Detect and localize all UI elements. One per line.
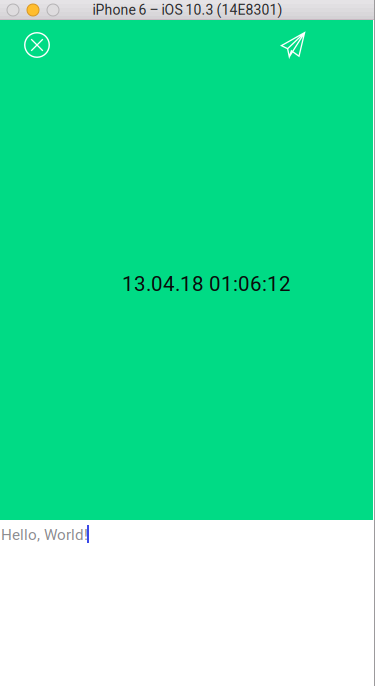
staticText: iPhone 6 – iOS 10.3 (14E8301) <box>92 2 282 18</box>
button[interactable]: Close <box>24 32 50 58</box>
staticText: Hello, World! <box>1 526 88 544</box>
staticText: 13.04.18 01:06:12 <box>122 272 291 296</box>
button[interactable]: Send <box>280 32 306 58</box>
